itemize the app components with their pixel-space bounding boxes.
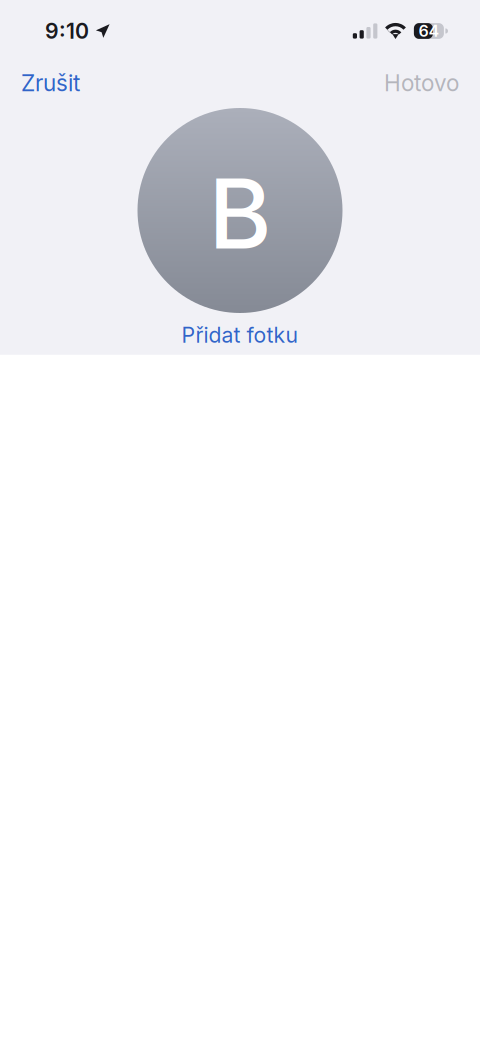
staticText: B [208, 155, 271, 272]
staticText: Zrušit [21, 69, 80, 97]
button[interactable]: Hotovo [376, 61, 467, 105]
staticText: 64 [418, 21, 439, 41]
button[interactable]: B [137, 108, 342, 348]
staticText: 9:10 [45, 18, 89, 44]
staticText: Hotovo [384, 69, 459, 97]
button[interactable]: Zrušit [13, 61, 88, 105]
staticText: Přidat fotku [181, 322, 298, 348]
